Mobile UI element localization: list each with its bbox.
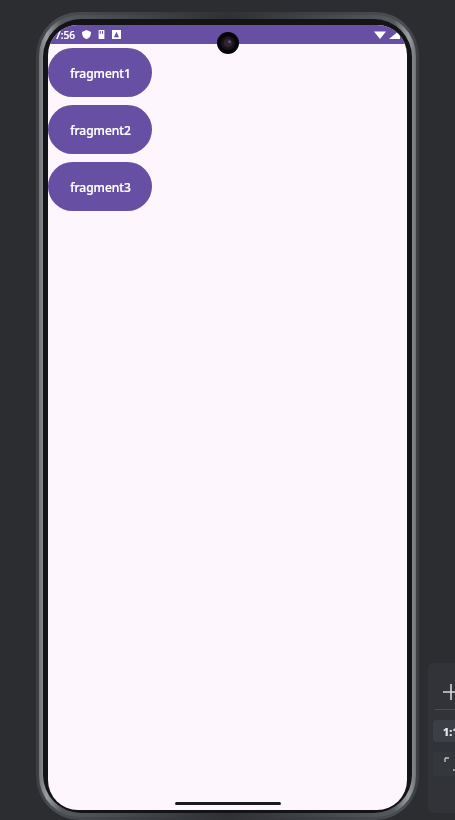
- button[interactable]: fragment3: [48, 162, 152, 211]
- button[interactable]: 1:1: [433, 720, 455, 742]
- staticText: fragment1: [70, 65, 131, 81]
- button[interactable]: fragment2: [48, 105, 152, 154]
- staticText: fragment3: [70, 179, 131, 195]
- staticText: fragment2: [70, 122, 131, 138]
- button[interactable]: fragment1: [48, 48, 152, 97]
- button[interactable]: Fit to window: [433, 752, 455, 776]
- staticText: 1:1: [443, 724, 455, 739]
- staticText: 7:56: [55, 28, 75, 42]
- button[interactable]: Zoom in: [434, 675, 455, 709]
